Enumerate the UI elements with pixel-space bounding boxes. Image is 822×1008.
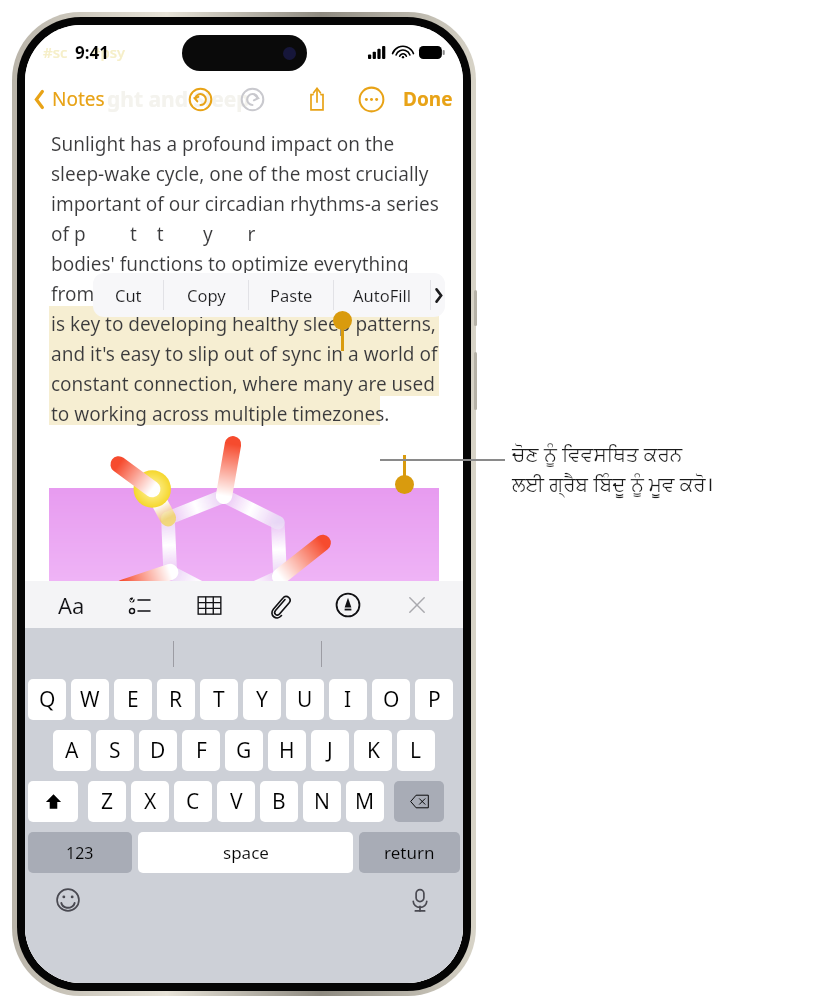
staticText: E bbox=[127, 685, 139, 714]
staticText: Aa bbox=[58, 590, 85, 620]
button[interactable]: Q bbox=[28, 679, 66, 720]
button[interactable]: N bbox=[303, 781, 341, 822]
staticText: AutoFill bbox=[353, 284, 412, 306]
button[interactable]: X bbox=[131, 781, 169, 822]
button[interactable]: Notes bbox=[33, 86, 105, 112]
staticText: from wakefulness to digestion. Consisten… bbox=[51, 281, 438, 307]
staticText: #sc #psy bbox=[43, 42, 125, 62]
button[interactable]: Close keyboard bbox=[397, 585, 437, 625]
staticText: ght and Sleep bbox=[107, 85, 250, 114]
button[interactable]: P bbox=[415, 679, 453, 720]
staticText: L bbox=[410, 736, 422, 765]
staticText: U bbox=[297, 685, 313, 714]
button[interactable]: 123 bbox=[28, 832, 132, 873]
staticText: J bbox=[327, 736, 333, 765]
staticText: is key to developing healthy sleep patte… bbox=[51, 311, 436, 337]
button[interactable]: A bbox=[53, 730, 91, 771]
staticText: Notes bbox=[52, 86, 105, 112]
staticText: N bbox=[314, 787, 330, 816]
button[interactable]: V bbox=[217, 781, 255, 822]
staticText: ਚੋਣ ਨੂੰ ਵਿਵਸਥਿਤ ਕਰਨ bbox=[512, 440, 683, 467]
button[interactable]: B bbox=[260, 781, 298, 822]
button[interactable]: K bbox=[354, 730, 392, 771]
staticText: A bbox=[65, 736, 79, 765]
staticText: Done bbox=[403, 86, 453, 112]
button[interactable]: I bbox=[329, 679, 367, 720]
button[interactable]: Cut bbox=[93, 273, 163, 317]
staticText: G bbox=[236, 736, 252, 765]
staticText: space bbox=[223, 841, 269, 864]
button[interactable]: Markup bbox=[328, 585, 368, 625]
staticText: bodies' functions to optimize everything bbox=[51, 251, 409, 277]
button[interactable]: return bbox=[359, 832, 460, 873]
button[interactable]: S bbox=[96, 730, 134, 771]
button[interactable]: H bbox=[268, 730, 306, 771]
staticText: return bbox=[384, 841, 435, 864]
staticText: Cut bbox=[115, 284, 142, 306]
staticText: W bbox=[80, 685, 100, 714]
staticText: V bbox=[230, 787, 243, 816]
button[interactable]: D bbox=[139, 730, 177, 771]
button[interactable]: Redo bbox=[237, 84, 267, 114]
button[interactable]: Attach bbox=[259, 585, 299, 625]
staticText: of p t t y r bbox=[51, 221, 256, 247]
button[interactable]: Shift bbox=[28, 781, 78, 822]
button[interactable]: E bbox=[114, 679, 152, 720]
staticText: 9:41 bbox=[75, 41, 109, 64]
staticText: R bbox=[169, 685, 183, 714]
staticText: ਲਈ ਗ੍ਰੈਬ ਬਿੰਦੂ ਨੂੰ ਮੂਵ ਕਰੋ। bbox=[512, 470, 714, 497]
staticText: D bbox=[150, 736, 166, 765]
staticText: M bbox=[355, 787, 375, 816]
staticText: K bbox=[367, 736, 380, 765]
button[interactable]: Emoji bbox=[51, 883, 85, 917]
staticText: sleep-wake cycle, one of the most crucia… bbox=[51, 161, 429, 187]
button[interactable]: Dictation bbox=[403, 883, 437, 917]
button[interactable]: Paste bbox=[249, 273, 333, 317]
staticText: T bbox=[213, 685, 225, 714]
staticText: B bbox=[272, 787, 286, 816]
button[interactable]: More options bbox=[355, 83, 387, 115]
button[interactable]: Backspace bbox=[394, 781, 444, 822]
button[interactable]: M bbox=[346, 781, 384, 822]
staticText: constant connection, where many are used bbox=[51, 371, 435, 397]
staticText: 123 bbox=[66, 842, 94, 864]
button[interactable]: Done bbox=[403, 86, 453, 112]
staticText: O bbox=[383, 685, 400, 714]
button[interactable]: Checklist bbox=[120, 585, 160, 625]
staticText: important of our circadian rhythms-a ser… bbox=[51, 191, 439, 217]
button[interactable]: More actions bbox=[431, 273, 445, 317]
button[interactable]: Table bbox=[189, 585, 229, 625]
button[interactable]: R bbox=[157, 679, 195, 720]
button[interactable]: U bbox=[286, 679, 324, 720]
button[interactable]: L bbox=[397, 730, 435, 771]
button[interactable]: F bbox=[182, 730, 220, 771]
button[interactable]: O bbox=[372, 679, 410, 720]
staticText: to working across multiple timezones. bbox=[51, 401, 390, 427]
button[interactable]: Share bbox=[301, 83, 333, 115]
staticText: H bbox=[279, 736, 295, 765]
staticText: X bbox=[144, 787, 157, 816]
button[interactable]: AutoFill bbox=[334, 273, 430, 317]
staticText: I bbox=[344, 685, 352, 714]
button[interactable]: space bbox=[138, 832, 353, 873]
staticText: F bbox=[196, 736, 207, 765]
staticText: C bbox=[186, 787, 200, 816]
button[interactable]: T bbox=[200, 679, 238, 720]
staticText: S bbox=[109, 736, 121, 765]
button[interactable]: C bbox=[174, 781, 212, 822]
button[interactable]: W bbox=[71, 679, 109, 720]
button[interactable]: Z bbox=[88, 781, 126, 822]
staticText: P bbox=[428, 685, 441, 714]
staticText: Q bbox=[39, 685, 56, 714]
button[interactable]: Y bbox=[243, 679, 281, 720]
button[interactable]: Copy bbox=[164, 273, 248, 317]
staticText: Z bbox=[101, 787, 114, 816]
staticText: Paste bbox=[270, 284, 313, 306]
staticText: Copy bbox=[187, 284, 226, 306]
button[interactable]: Undo bbox=[185, 84, 215, 114]
staticText: and it's easy to slip out of sync in a w… bbox=[51, 341, 438, 367]
button[interactable]: G bbox=[225, 730, 263, 771]
button[interactable]: Aa bbox=[51, 585, 91, 625]
button[interactable]: J bbox=[311, 730, 349, 771]
staticText: Sunlight has a profound impact on the bbox=[51, 131, 395, 157]
